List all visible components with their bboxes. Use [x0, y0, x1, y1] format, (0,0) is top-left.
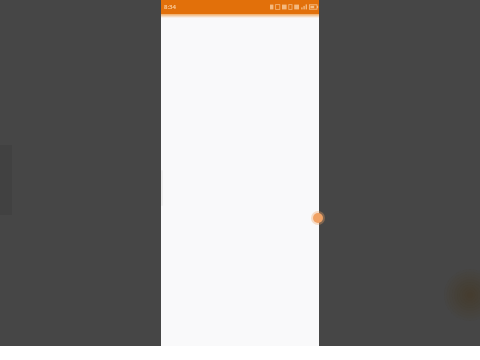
other: Touch indicator: [311, 211, 325, 225]
button[interactable]: 8:34: [161, 0, 319, 14]
staticText: 8:34: [164, 3, 176, 11]
button[interactable]: Scroll position: [161, 18, 319, 346]
